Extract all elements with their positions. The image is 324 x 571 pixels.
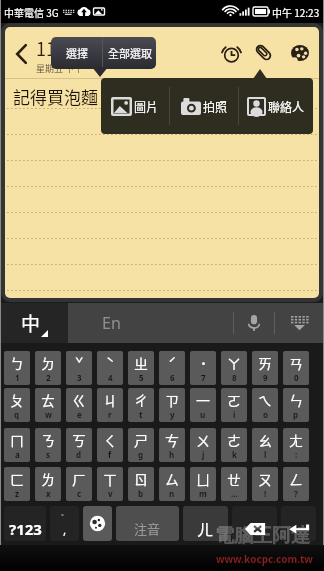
button[interactable]: ?123	[4, 506, 46, 541]
staticText: w	[45, 409, 52, 420]
staticText: 。	[61, 508, 68, 517]
button[interactable]: ㄤ	[283, 428, 309, 462]
button[interactable]: ㄙ	[159, 467, 185, 501]
staticText: g	[138, 449, 144, 460]
button[interactable]: ㄒ	[97, 467, 123, 501]
button[interactable]: ㄟ	[252, 388, 278, 422]
button[interactable]: 。	[50, 506, 79, 541]
button[interactable]: ˊ	[159, 351, 185, 385]
staticText: j	[202, 449, 205, 460]
staticText: ㄤ	[289, 430, 303, 450]
button[interactable]: ㄋ	[35, 428, 61, 462]
button[interactable]: 注音	[116, 506, 179, 541]
staticText: ㄘ	[165, 430, 179, 450]
button[interactable]: ˋ	[97, 351, 123, 385]
staticText: ㄚ	[227, 353, 241, 373]
staticText: 中午 12:23	[272, 5, 320, 19]
button[interactable]: 中	[0, 303, 68, 343]
staticText: 8	[232, 372, 237, 383]
button[interactable]: ㄑ	[97, 428, 123, 462]
button[interactable]: ㄇ	[4, 428, 30, 462]
staticText: ,	[63, 521, 67, 537]
staticText: y	[170, 409, 175, 420]
staticText: www.kocpc.com.tw	[216, 552, 313, 566]
button[interactable]: 選擇	[51, 37, 102, 69]
button[interactable]: ㄅ	[4, 351, 30, 385]
staticText: ㄝ	[227, 469, 241, 489]
button[interactable]: ㄝ	[221, 467, 247, 501]
button[interactable]: ㄨ	[190, 428, 216, 462]
button[interactable]: ㄈ	[4, 467, 30, 501]
button[interactable]: Change language	[83, 506, 112, 541]
button[interactable]: Voice input	[234, 303, 274, 343]
staticText: 聯絡人	[268, 98, 305, 115]
staticText: h	[169, 449, 175, 460]
button[interactable]: ㄏ	[66, 467, 92, 501]
staticText: 6	[170, 372, 175, 383]
staticText: ㄕ	[134, 430, 148, 450]
button[interactable]: En	[68, 303, 154, 343]
button[interactable]: ㄔ	[128, 388, 154, 422]
staticText: 7	[201, 372, 206, 383]
staticText: z	[15, 488, 19, 499]
staticText: ㄏ	[72, 469, 86, 489]
button[interactable]: ㄌ	[35, 467, 61, 501]
button[interactable]: ㄎ	[66, 428, 92, 462]
staticText: !	[264, 488, 267, 499]
button[interactable]: ㄆ	[4, 388, 30, 422]
staticText: ㄊ	[41, 390, 55, 410]
button[interactable]: ㄥ	[283, 467, 309, 501]
button[interactable]: 聯絡人	[239, 78, 313, 134]
staticText: 0	[294, 372, 299, 383]
staticText: :	[295, 449, 298, 460]
button[interactable]: Enter	[281, 506, 316, 541]
button[interactable]: ㄦ	[183, 506, 228, 541]
button[interactable]: ㄐ	[97, 388, 123, 422]
button[interactable]: ㄜ	[221, 428, 247, 462]
staticText: ㄑ	[103, 430, 117, 450]
staticText: r	[108, 409, 112, 420]
button[interactable]: ㄉ	[35, 351, 61, 385]
staticText: 一	[196, 390, 210, 410]
staticText: x	[46, 488, 51, 499]
button[interactable]: Backspace	[232, 506, 277, 541]
staticText: k	[232, 449, 237, 460]
button[interactable]: 拍照	[170, 78, 238, 134]
button[interactable]: Colour	[281, 27, 319, 78]
button[interactable]: ㄍ	[66, 388, 92, 422]
button[interactable]: Attach	[246, 27, 281, 78]
button[interactable]: ㄛ	[221, 388, 247, 422]
button[interactable]: 一	[190, 388, 216, 422]
button[interactable]: ㄊ	[35, 388, 61, 422]
button[interactable]: 全部選取	[103, 37, 156, 69]
button[interactable]: Back	[5, 27, 36, 78]
staticText: ㄣ	[289, 390, 303, 410]
staticText: ㄐ	[103, 390, 117, 410]
staticText: c	[77, 488, 82, 499]
staticText: 中	[21, 309, 41, 337]
button[interactable]: ˇ	[66, 351, 92, 385]
button[interactable]: ㄘ	[159, 428, 185, 462]
button[interactable]: ㄓ	[128, 351, 154, 385]
button[interactable]: ㄖ	[128, 467, 154, 501]
staticText: d	[76, 449, 82, 460]
button[interactable]: Alarm	[216, 27, 246, 78]
button[interactable]: ㄞ	[252, 351, 278, 385]
button[interactable]: ㄢ	[283, 351, 309, 385]
staticText: p	[293, 409, 299, 420]
button[interactable]: ㄡ	[252, 467, 278, 501]
button[interactable]: ㄗ	[159, 388, 185, 422]
button[interactable]: ˙	[190, 351, 216, 385]
button[interactable]: 圖片	[101, 78, 169, 134]
staticText: ㄅ	[10, 353, 24, 373]
staticText: ㄇ	[10, 430, 24, 450]
staticText: n	[169, 488, 175, 499]
staticText: 2	[46, 372, 51, 383]
staticText: ㄗ	[165, 390, 179, 410]
button[interactable]: ㄩ	[190, 467, 216, 501]
button[interactable]: ㄚ	[221, 351, 247, 385]
button[interactable]: Hide keyboard	[275, 303, 324, 343]
button[interactable]: ㄕ	[128, 428, 154, 462]
button[interactable]: ㄠ	[252, 428, 278, 462]
button[interactable]: ㄣ	[283, 388, 309, 422]
